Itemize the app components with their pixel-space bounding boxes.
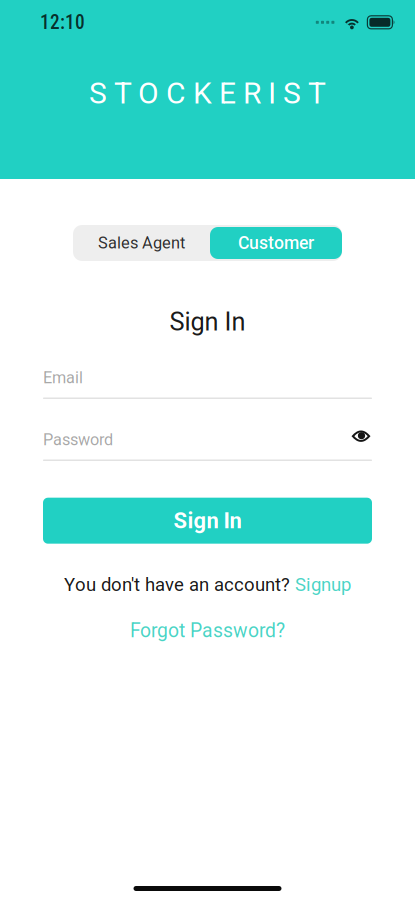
button[interactable]: Sales Agent — [73, 225, 210, 261]
staticText: Sign In — [169, 307, 245, 337]
button[interactable]: Show password — [343, 428, 372, 451]
staticText: Signup — [290, 574, 351, 595]
button[interactable]: Forgot Password? — [130, 619, 285, 642]
staticText: Password — [43, 430, 113, 449]
staticText: Sales Agent — [98, 233, 185, 253]
button[interactable]: Sign In — [43, 498, 372, 544]
button[interactable]: Customer — [210, 227, 342, 259]
staticText: Email — [43, 368, 83, 387]
button[interactable]: Signup — [290, 574, 351, 595]
staticText: S T O C K E R I S T — [89, 76, 326, 111]
staticText: 12:10 — [40, 11, 85, 34]
staticText: Customer — [238, 233, 314, 253]
staticText: Sign In — [173, 508, 241, 534]
staticText: You don't have an account? — [64, 574, 290, 595]
staticText: Forgot Password? — [130, 619, 285, 642]
